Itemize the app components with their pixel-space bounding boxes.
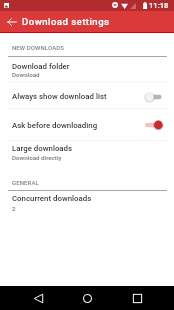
staticText: Large downloads xyxy=(12,144,73,153)
button[interactable] xyxy=(0,83,174,108)
button[interactable] xyxy=(0,191,174,219)
staticText: 11:18 xyxy=(149,1,169,10)
staticText: Download settings xyxy=(22,16,110,27)
staticText: Always show download list xyxy=(12,92,107,101)
staticText: Ask before downloading xyxy=(12,121,98,130)
staticText: GENERAL xyxy=(12,179,39,186)
button[interactable]: Navigate up xyxy=(1,11,22,32)
staticText: NEW DOWNLOADS xyxy=(12,44,65,51)
staticText: Download xyxy=(12,71,40,78)
button[interactable]: Recent apps xyxy=(125,286,149,310)
button[interactable]: Back xyxy=(26,286,50,310)
staticText: Download folder xyxy=(12,62,70,71)
staticText: Download directly xyxy=(12,154,62,161)
button[interactable] xyxy=(0,56,174,82)
button[interactable] xyxy=(0,140,174,168)
staticText: Concurrent downloads xyxy=(12,194,92,203)
button[interactable]: Home xyxy=(75,286,99,310)
staticText: 2 xyxy=(12,205,16,212)
button[interactable] xyxy=(0,108,174,140)
